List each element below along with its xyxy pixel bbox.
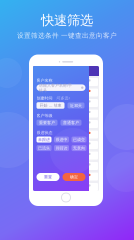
staticText: 待回访 — [55, 146, 67, 150]
button[interactable]: 已流失 — [36, 145, 51, 151]
staticText: 跟进中 — [55, 137, 67, 142]
button[interactable]: 确定 — [62, 173, 85, 181]
button[interactable]: 重要客户 — [36, 120, 57, 126]
staticText: 跟进状态 — [36, 130, 52, 135]
staticText: 普通客户 — [63, 120, 79, 125]
button[interactable]: 跟进中 — [54, 137, 69, 143]
staticText: 客户等级 — [36, 113, 52, 118]
staticText: 未跟进 — [38, 137, 50, 142]
staticText: 重置 — [44, 174, 52, 179]
button[interactable]: 近30天 — [67, 102, 84, 108]
staticText: 近30天 — [70, 103, 82, 108]
staticText: (可多选) — [55, 95, 69, 101]
staticText: 无意向 — [73, 146, 85, 150]
staticText: 客户名称 — [36, 78, 52, 83]
staticText: — — [48, 103, 52, 108]
button[interactable]: 开始 — [36, 102, 64, 109]
button[interactable]: 普通客户 — [60, 120, 81, 126]
staticText: 创建时间 — [36, 96, 52, 100]
staticText: 已流失 — [38, 146, 50, 150]
staticText: 开始 — [39, 103, 47, 108]
staticText: 结束 — [53, 103, 61, 108]
staticText: 请输入客户名称/手机号 — [39, 83, 72, 93]
button[interactable]: 未跟进 — [36, 137, 51, 143]
staticText: 确定 — [70, 174, 78, 179]
staticText: 重要客户 — [39, 120, 55, 125]
staticText: 快速筛选 — [41, 12, 93, 28]
button[interactable]: 待回访 — [54, 145, 69, 151]
button[interactable]: 已成交 — [71, 137, 86, 143]
staticText: 设置筛选条件 一键查出意向客户 — [17, 31, 117, 40]
staticText: 已成交 — [73, 137, 85, 142]
button[interactable]: 重置 — [36, 173, 59, 181]
button[interactable]: 无意向 — [71, 145, 86, 151]
button[interactable]: 请输入客户名称/手机号 — [36, 84, 85, 91]
